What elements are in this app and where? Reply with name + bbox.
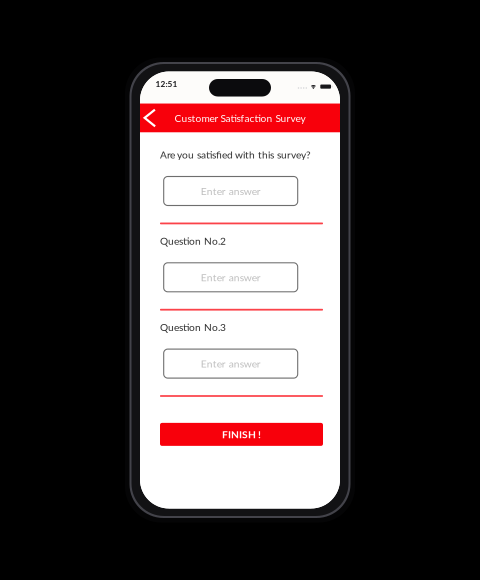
button[interactable]: Back: [140, 103, 164, 132]
staticText: FINISH !: [222, 428, 261, 440]
button[interactable]: Enter answer: [164, 263, 298, 292]
staticText: Question No.2: [160, 235, 226, 247]
staticText: Customer Satisfaction Survey: [174, 112, 305, 124]
staticText: Enter answer: [201, 271, 261, 283]
button[interactable]: FINISH !: [160, 423, 323, 446]
button[interactable]: Enter answer: [164, 349, 298, 378]
button[interactable]: Enter answer: [164, 176, 298, 205]
staticText: Are you satisfied with this survey?: [160, 148, 311, 161]
staticText: Question No.3: [160, 321, 226, 333]
staticText: Enter answer: [201, 185, 261, 197]
staticText: Enter answer: [201, 357, 261, 370]
staticText: 12:51: [155, 79, 177, 89]
